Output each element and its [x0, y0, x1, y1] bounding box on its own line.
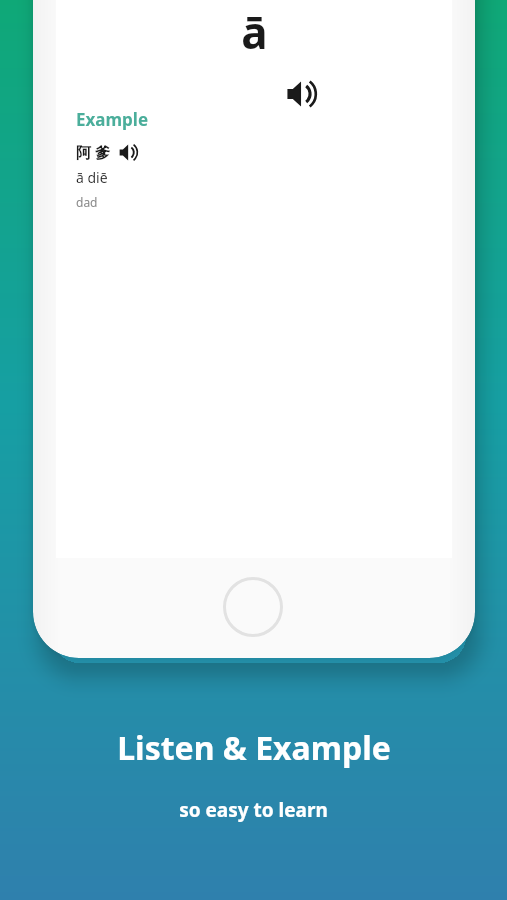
staticText: 阿 爹 — [76, 142, 110, 162]
staticText: ā diē — [76, 168, 108, 187]
staticText: ā — [241, 2, 268, 62]
staticText: so easy to learn — [179, 797, 328, 823]
staticText: dad — [76, 194, 98, 210]
staticText: Listen & Example — [117, 726, 391, 770]
staticText: Example — [76, 108, 149, 131]
button[interactable]: Home — [223, 577, 283, 637]
button[interactable]: Play pronunciation — [284, 78, 316, 110]
button[interactable]: Play example — [117, 142, 137, 162]
